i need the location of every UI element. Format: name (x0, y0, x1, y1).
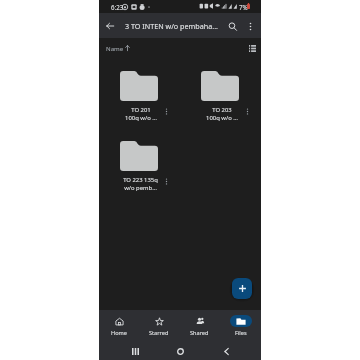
button[interactable]: Home (99, 310, 139, 342)
button[interactable]: Starred (139, 310, 179, 342)
button[interactable]: Files (220, 310, 261, 342)
button[interactable]: Switch to list view (246, 42, 258, 54)
staticText: 6:23 (111, 3, 124, 11)
staticText: Shared (190, 329, 209, 337)
button[interactable]: More options (243, 19, 257, 33)
button[interactable]: More options (161, 176, 171, 186)
staticText: 7% (239, 3, 248, 11)
button[interactable]: Back (101, 17, 119, 35)
button[interactable]: TO 201 (99, 64, 180, 128)
button[interactable]: TO 223 135q (99, 134, 180, 198)
button[interactable]: More options (161, 106, 171, 116)
button[interactable]: Name (104, 43, 132, 53)
staticText: TO 223 135q (123, 176, 158, 184)
staticText: Home (111, 329, 127, 337)
button[interactable]: Shared (179, 310, 220, 342)
staticText: Starred (149, 329, 169, 337)
staticText: Files (235, 329, 247, 337)
button[interactable]: Recent apps (127, 343, 143, 359)
button[interactable]: More options (242, 106, 252, 116)
staticText: TO 203 (212, 106, 232, 114)
staticText: TO 201 (131, 106, 151, 114)
staticText: 100q w/o … (206, 114, 238, 122)
button[interactable]: Home (172, 343, 188, 359)
staticText: 3 TO INTEN w/o pembaha... (125, 21, 218, 31)
staticText: 100q w/o … (125, 114, 157, 122)
button[interactable]: Back (218, 343, 234, 359)
button[interactable]: Add (232, 278, 252, 299)
button[interactable]: Search (224, 18, 240, 34)
staticText: w/o pemb… (124, 184, 157, 192)
button[interactable]: TO 203 (180, 64, 261, 128)
staticText: Name (106, 44, 124, 52)
